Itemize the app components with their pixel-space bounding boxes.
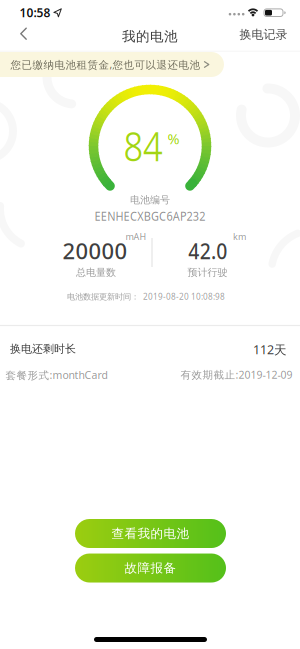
staticText: 换电还剩时长 — [10, 342, 76, 355]
staticText: 我的电池 — [122, 28, 178, 45]
staticText: 换电记录 — [239, 27, 287, 42]
button[interactable]: 查看我的电池 — [75, 519, 226, 548]
staticText: 套餐形式:monthCard — [5, 368, 107, 382]
staticText: 42.0 — [185, 236, 230, 265]
staticText: 84 — [120, 119, 166, 172]
staticText: 20000 — [62, 236, 127, 265]
staticText: 您已缴纳电池租赁金,您也可以退还电池 — [10, 57, 200, 71]
button[interactable]: 您已缴纳电池租赁金,您也可以退还电池 — [0, 52, 224, 77]
staticText: 预计行驶 — [187, 266, 227, 279]
staticText: 总电量数 — [76, 266, 116, 279]
staticText: 电池编号 — [130, 194, 170, 206]
staticText: 有效期截止:2019-12-09 — [180, 368, 292, 381]
button[interactable]: Back — [15, 25, 31, 43]
button[interactable]: 换电记录 — [239, 27, 287, 42]
staticText: % — [167, 129, 179, 148]
staticText: EENHECXBGC6AP232 — [89, 208, 211, 224]
staticText: 112天 — [253, 341, 287, 358]
staticText: 电池数据更新时间： 2019-08-20 10:08:98 — [67, 291, 225, 302]
staticText: 10:58 — [19, 4, 50, 20]
staticText: km — [233, 230, 246, 242]
staticText: 故障报备 — [124, 560, 176, 576]
staticText: 查看我的电池 — [111, 526, 189, 541]
staticText: mAH — [125, 230, 146, 242]
button[interactable]: 故障报备 — [75, 553, 226, 582]
